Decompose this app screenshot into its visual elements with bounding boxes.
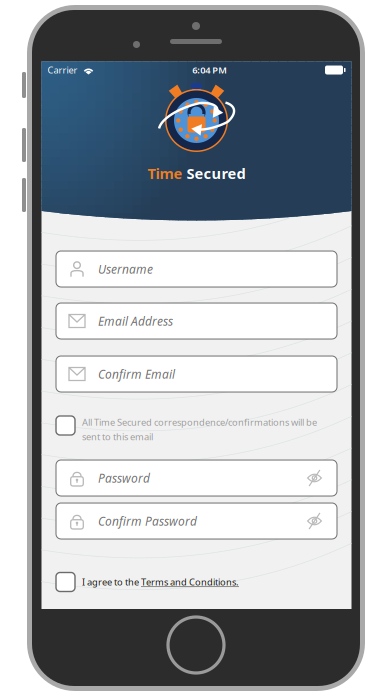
staticText: 6:04 PM (192, 64, 227, 76)
staticText: Secured (182, 163, 245, 183)
staticText: Carrier (47, 64, 77, 76)
staticText: sent to this email (82, 430, 153, 443)
button[interactable]: Email Address (56, 303, 337, 339)
staticText: Username (98, 261, 153, 277)
button[interactable]: Confirm Email (56, 356, 337, 392)
button[interactable]: All Time Secured correspondence/confirma… (56, 416, 337, 443)
staticText: Confirm Password (98, 513, 197, 529)
staticText: Time (147, 163, 182, 183)
staticText: I agree to the Terms and Conditions. (82, 576, 239, 588)
staticText: Confirm Email (98, 366, 175, 382)
staticText: All Time Secured correspondence/confirma… (82, 416, 317, 428)
button[interactable]: I agree to the Terms and Conditions. (56, 572, 337, 591)
button[interactable]: Password (56, 460, 337, 496)
staticText: Password (98, 470, 150, 486)
button[interactable]: Confirm Password (56, 503, 337, 539)
staticText: Email Address (98, 313, 173, 329)
button[interactable]: Username (56, 251, 337, 287)
